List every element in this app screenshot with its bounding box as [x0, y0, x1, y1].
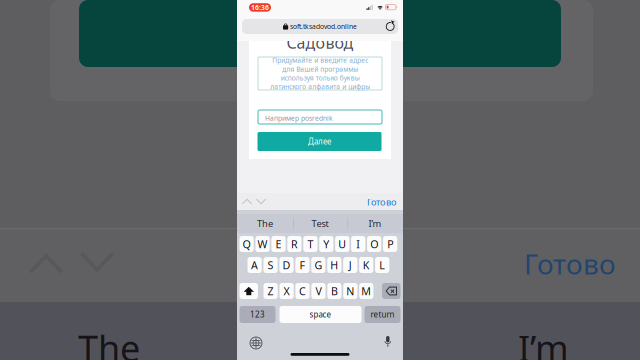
staticText: E — [275, 237, 281, 251]
staticText: Test — [311, 217, 328, 230]
staticText: H — [330, 258, 338, 272]
button[interactable]: 123 — [239, 306, 275, 323]
staticText: 123 — [250, 309, 265, 320]
button[interactable]: P — [383, 236, 397, 252]
staticText: The — [257, 217, 273, 230]
staticText: P — [387, 237, 393, 251]
button[interactable]: C — [295, 283, 310, 299]
button[interactable]: H — [327, 257, 341, 273]
staticText: Z — [268, 284, 274, 298]
button[interactable]: R — [287, 236, 302, 252]
staticText: W — [258, 237, 268, 251]
button[interactable]: M — [359, 283, 373, 299]
button[interactable]: E — [271, 236, 286, 252]
staticText: X — [284, 284, 290, 298]
button[interactable]: G — [311, 257, 325, 273]
button[interactable]: Next keyboard — [250, 337, 262, 349]
staticText: I’m — [518, 324, 569, 360]
staticText: C — [299, 284, 306, 298]
button[interactable]: Dictate — [384, 336, 392, 347]
staticText: Q — [243, 237, 251, 251]
button[interactable]: L — [375, 257, 389, 273]
button[interactable]: F — [295, 257, 310, 273]
staticText: G — [314, 258, 322, 272]
staticText: space — [309, 309, 331, 320]
staticText: S — [268, 258, 274, 272]
staticText: Готово — [367, 196, 397, 208]
button[interactable]: J — [343, 257, 357, 273]
button[interactable]: Z — [263, 283, 278, 299]
staticText: R — [291, 237, 298, 251]
button[interactable]: X — [279, 283, 294, 299]
staticText: V — [315, 284, 321, 298]
staticText: U — [338, 237, 346, 251]
button[interactable]: W — [255, 236, 270, 252]
staticText: A — [251, 258, 258, 272]
staticText: Например posrednik — [265, 114, 333, 123]
button[interactable]: V — [311, 283, 326, 299]
button[interactable]: return — [364, 306, 400, 323]
button[interactable]: T — [303, 236, 317, 252]
button[interactable]: Готово — [367, 197, 397, 207]
button[interactable]: I — [351, 236, 365, 252]
button[interactable]: Previous field — [242, 197, 252, 205]
staticText: 16:36 — [251, 3, 269, 12]
button[interactable]: N — [343, 283, 357, 299]
staticText: Садовод — [286, 32, 353, 53]
staticText: L — [379, 258, 385, 272]
button[interactable]: I’m — [348, 214, 402, 233]
staticText: I — [356, 237, 360, 251]
staticText: Y — [323, 237, 329, 251]
staticText: Далее — [308, 136, 331, 147]
staticText: M — [361, 284, 371, 298]
button[interactable]: Q — [239, 236, 254, 252]
staticText: D — [282, 258, 290, 272]
button[interactable]: A — [247, 257, 262, 273]
staticText: K — [363, 258, 370, 272]
staticText: Придумайте и введите адрес для Вашей про… — [270, 56, 370, 91]
staticText: Готово — [524, 245, 616, 282]
staticText: soft.tksadovod.online — [290, 22, 357, 31]
button[interactable]: Next field — [256, 197, 266, 205]
button[interactable]: S — [263, 257, 278, 273]
button[interactable]: O — [367, 236, 381, 252]
button[interactable]: Далее — [257, 132, 381, 151]
staticText: B — [331, 284, 338, 298]
staticText: F — [299, 258, 305, 272]
button[interactable]: The — [238, 214, 292, 233]
button[interactable]: U — [335, 236, 349, 252]
staticText: T — [307, 237, 313, 251]
button[interactable]: Test — [293, 214, 347, 233]
staticText: I’m — [368, 217, 381, 230]
button[interactable]: Reload page — [385, 20, 395, 32]
staticText: J — [349, 258, 352, 272]
staticText: return — [370, 309, 394, 320]
button[interactable]: Delete — [382, 283, 400, 299]
button[interactable]: Shift — [239, 283, 258, 299]
staticText: N — [346, 284, 354, 298]
staticText: The — [78, 324, 140, 360]
staticText: O — [370, 237, 378, 251]
button[interactable]: space — [279, 306, 361, 323]
button[interactable]: K — [359, 257, 373, 273]
button[interactable]: B — [327, 283, 341, 299]
button[interactable]: D — [279, 257, 294, 273]
button[interactable]: Y — [319, 236, 333, 252]
